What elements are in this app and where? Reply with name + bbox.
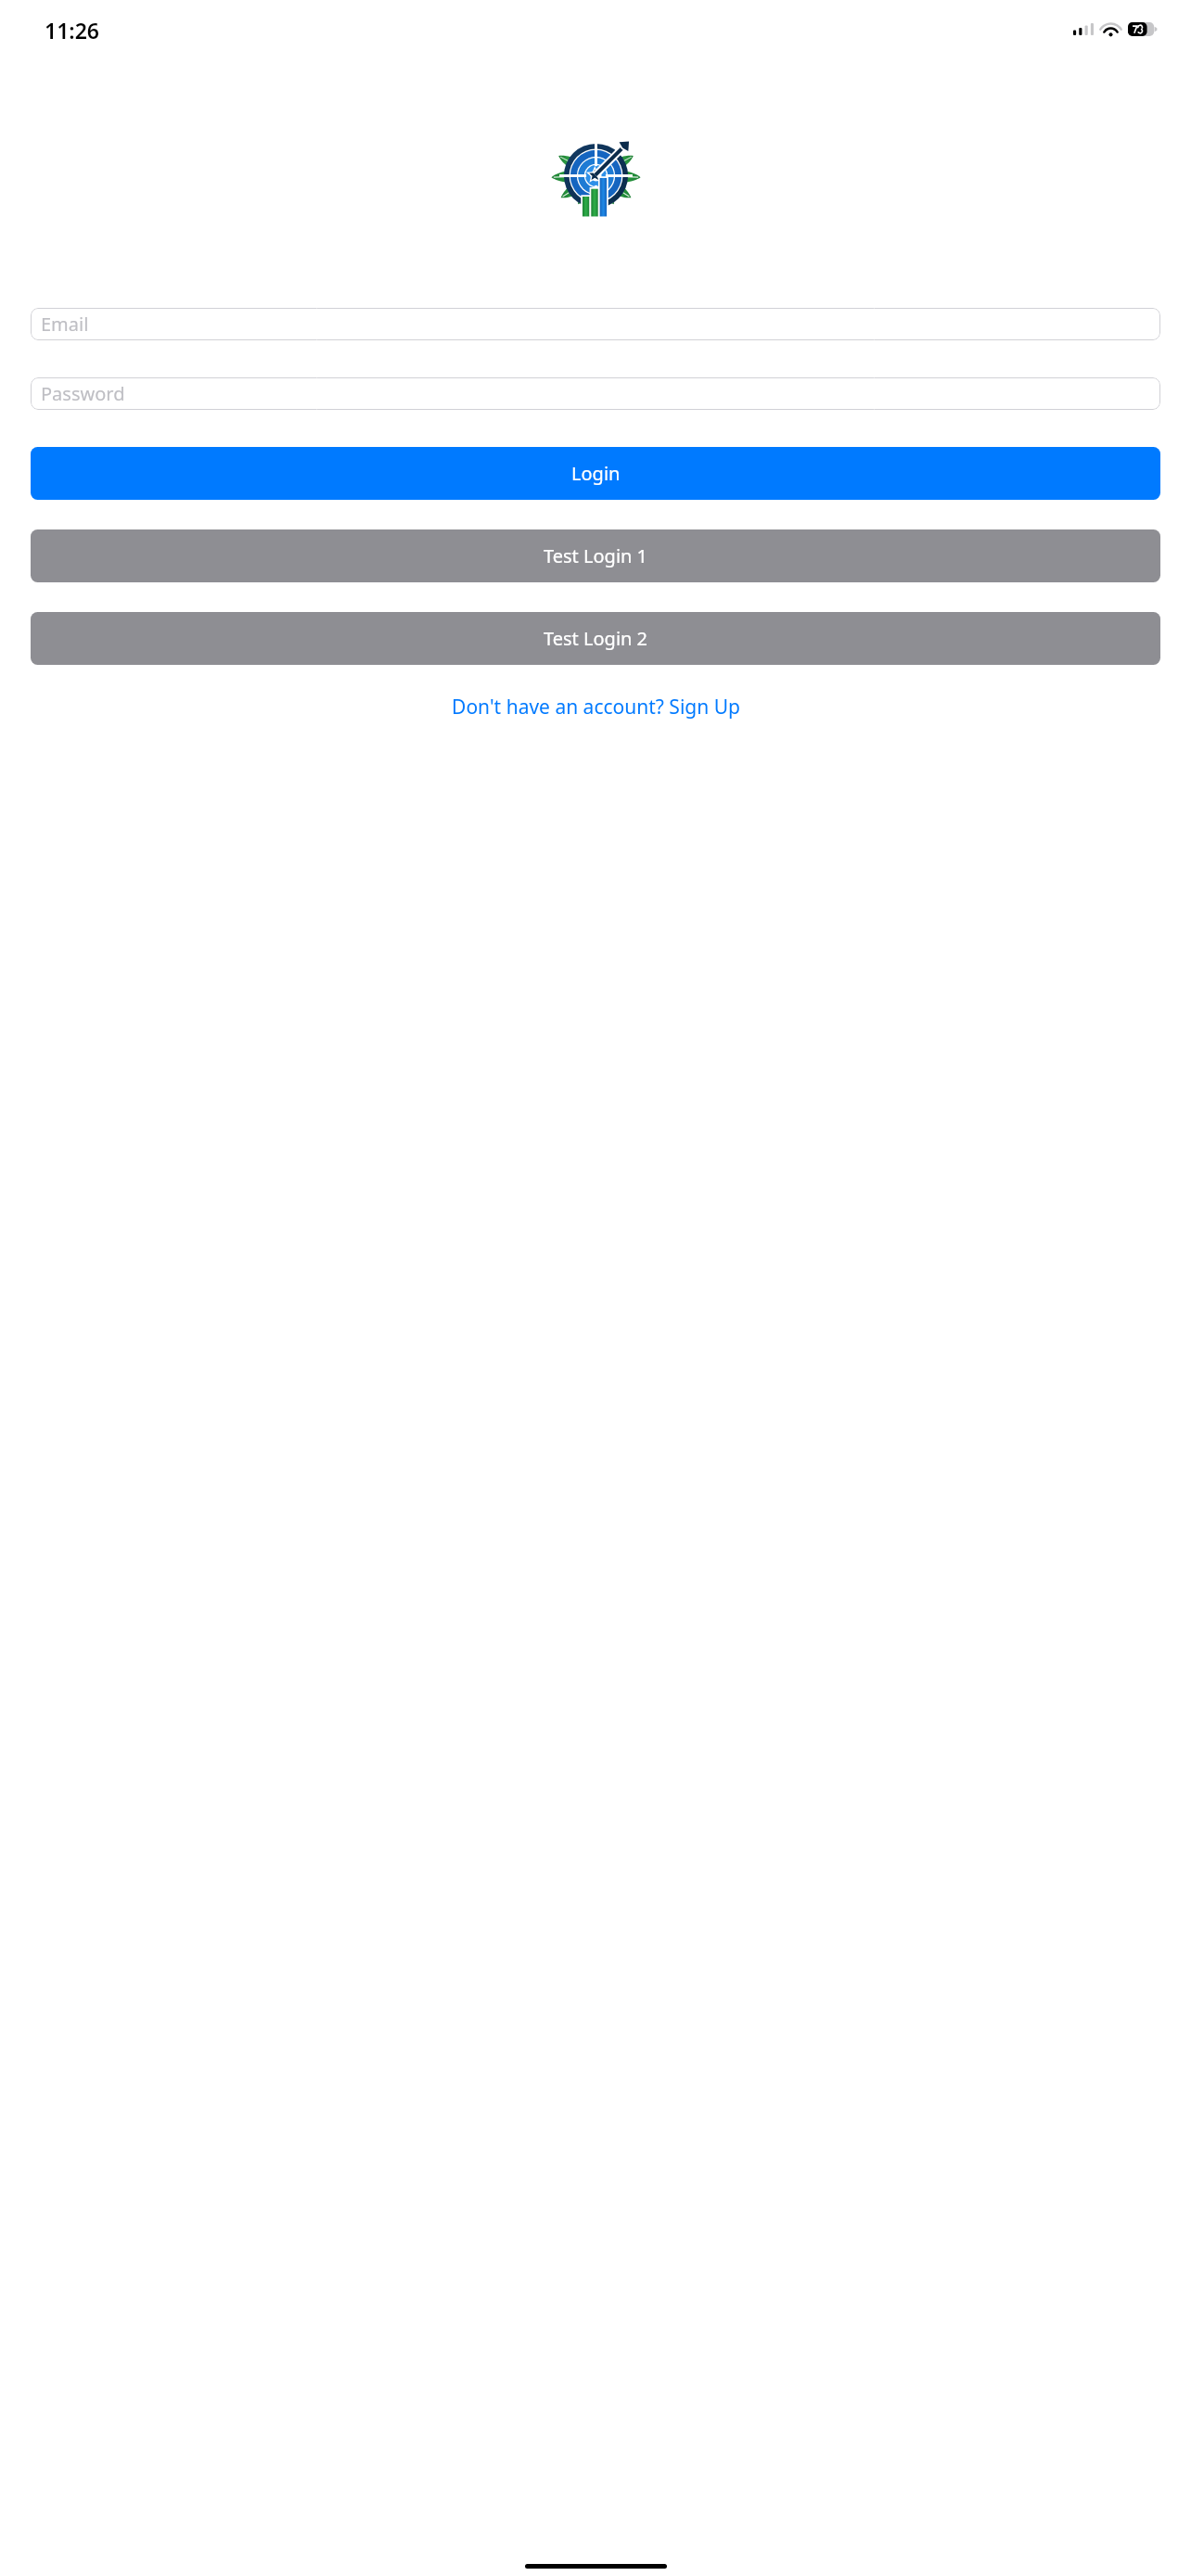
staticText: Test Login 2 <box>544 626 648 651</box>
button[interactable]: Don't have an account? Sign Up <box>31 688 1160 726</box>
staticText: 11:26 <box>45 16 99 45</box>
button[interactable]: Login <box>31 447 1160 500</box>
staticText: Don't have an account? Sign Up <box>452 694 740 721</box>
staticText: Test Login 1 <box>544 543 648 568</box>
button[interactable]: Test Login 1 <box>31 529 1160 582</box>
staticText: Password <box>41 381 125 406</box>
staticText: Login <box>571 461 621 486</box>
button[interactable]: Test Login 2 <box>31 612 1160 665</box>
button[interactable]: Password <box>31 377 1160 410</box>
button[interactable]: Email <box>31 308 1160 340</box>
staticText: Email <box>41 312 89 337</box>
